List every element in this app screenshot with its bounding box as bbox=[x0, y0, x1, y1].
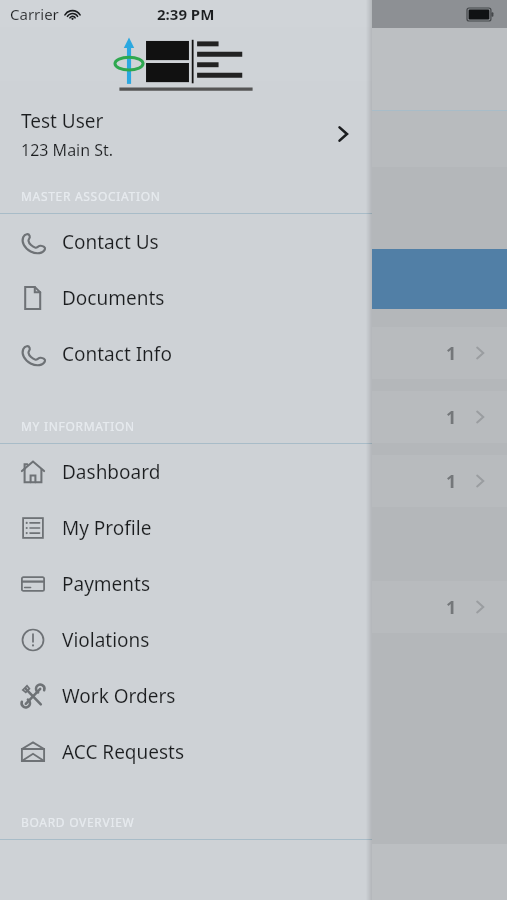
staticText: 1 bbox=[446, 341, 457, 366]
button[interactable]: ACC Requests bbox=[0, 724, 372, 780]
staticText: Violations bbox=[62, 627, 150, 653]
staticText: 1 bbox=[446, 595, 457, 620]
staticText: Test User bbox=[21, 108, 104, 134]
staticText: Documents bbox=[62, 285, 165, 311]
button[interactable]: Violations bbox=[0, 612, 372, 668]
button[interactable]: 1 bbox=[0, 391, 507, 443]
staticText: MASTER ASSOCIATION bbox=[21, 188, 161, 204]
button[interactable]: My Profile bbox=[0, 500, 372, 556]
button[interactable]: Payments bbox=[0, 556, 372, 612]
button[interactable]: Contact Us bbox=[0, 214, 372, 270]
staticText: Carrier bbox=[10, 4, 59, 24]
button[interactable]: Account Info bbox=[154, 121, 354, 157]
button[interactable]: 1 bbox=[0, 455, 507, 507]
button[interactable]: Test User bbox=[0, 98, 372, 170]
staticText: BOARD OVERVIEW bbox=[21, 814, 135, 830]
staticText: 123 Main St. bbox=[21, 139, 114, 161]
button[interactable]: Work Orders bbox=[0, 668, 372, 724]
staticText: 1 bbox=[446, 405, 457, 430]
staticText: Work Orders bbox=[62, 683, 176, 709]
staticText: 2:39 PM bbox=[157, 4, 215, 24]
staticText: MY INFORMATION bbox=[21, 418, 135, 434]
button[interactable]: 1 bbox=[0, 581, 507, 633]
button[interactable]: Documents bbox=[0, 270, 372, 326]
button[interactable]: Dashboard bbox=[0, 444, 372, 500]
staticText: Dashboard bbox=[62, 459, 161, 485]
staticText: ACC Requests bbox=[62, 739, 185, 765]
staticText: 1 bbox=[446, 469, 457, 494]
button[interactable]: 1 bbox=[0, 327, 507, 379]
button[interactable]: Contact Info bbox=[0, 326, 372, 382]
staticText: Contact Info bbox=[62, 341, 172, 367]
staticText: My Profile bbox=[62, 515, 152, 541]
staticText: Add Account bbox=[203, 59, 305, 79]
staticText: Payments bbox=[62, 571, 151, 597]
staticText: Contact Us bbox=[62, 229, 159, 255]
